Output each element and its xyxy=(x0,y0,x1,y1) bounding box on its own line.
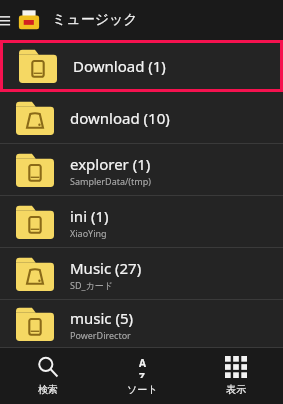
staticText: XiaoYing xyxy=(70,227,107,239)
staticText: Z xyxy=(139,370,145,378)
staticText: 表示 xyxy=(226,383,246,396)
button[interactable]: 検索 xyxy=(0,348,95,404)
staticText: ソート xyxy=(127,383,158,396)
staticText: SD_カード xyxy=(70,279,113,291)
staticText: explorer (1) xyxy=(70,154,151,174)
button[interactable]: explorer (1) xyxy=(0,144,283,196)
staticText: 検索 xyxy=(38,383,58,396)
button[interactable]: music (5) xyxy=(0,300,283,348)
staticText: ini (1) xyxy=(70,206,109,226)
staticText: download (10) xyxy=(70,108,170,128)
button[interactable]: App icon xyxy=(16,7,42,33)
button[interactable]: Music (27) xyxy=(0,248,283,300)
staticText: Music (27) xyxy=(70,258,142,278)
staticText: Download (1) xyxy=(73,56,166,76)
staticText: A xyxy=(139,356,146,370)
staticText: SamplerData/(tmp) xyxy=(70,175,151,187)
staticText: ミュージック xyxy=(52,11,138,29)
staticText: music (5) xyxy=(70,308,134,328)
button[interactable]: Menu xyxy=(0,0,16,40)
button[interactable]: A xyxy=(95,348,189,404)
button[interactable]: ini (1) xyxy=(0,196,283,248)
button[interactable]: download (10) xyxy=(0,92,283,144)
button[interactable]: Download (1) xyxy=(0,40,283,92)
staticText: PowerDirector xyxy=(70,329,131,341)
button[interactable]: 表示 xyxy=(189,348,283,404)
